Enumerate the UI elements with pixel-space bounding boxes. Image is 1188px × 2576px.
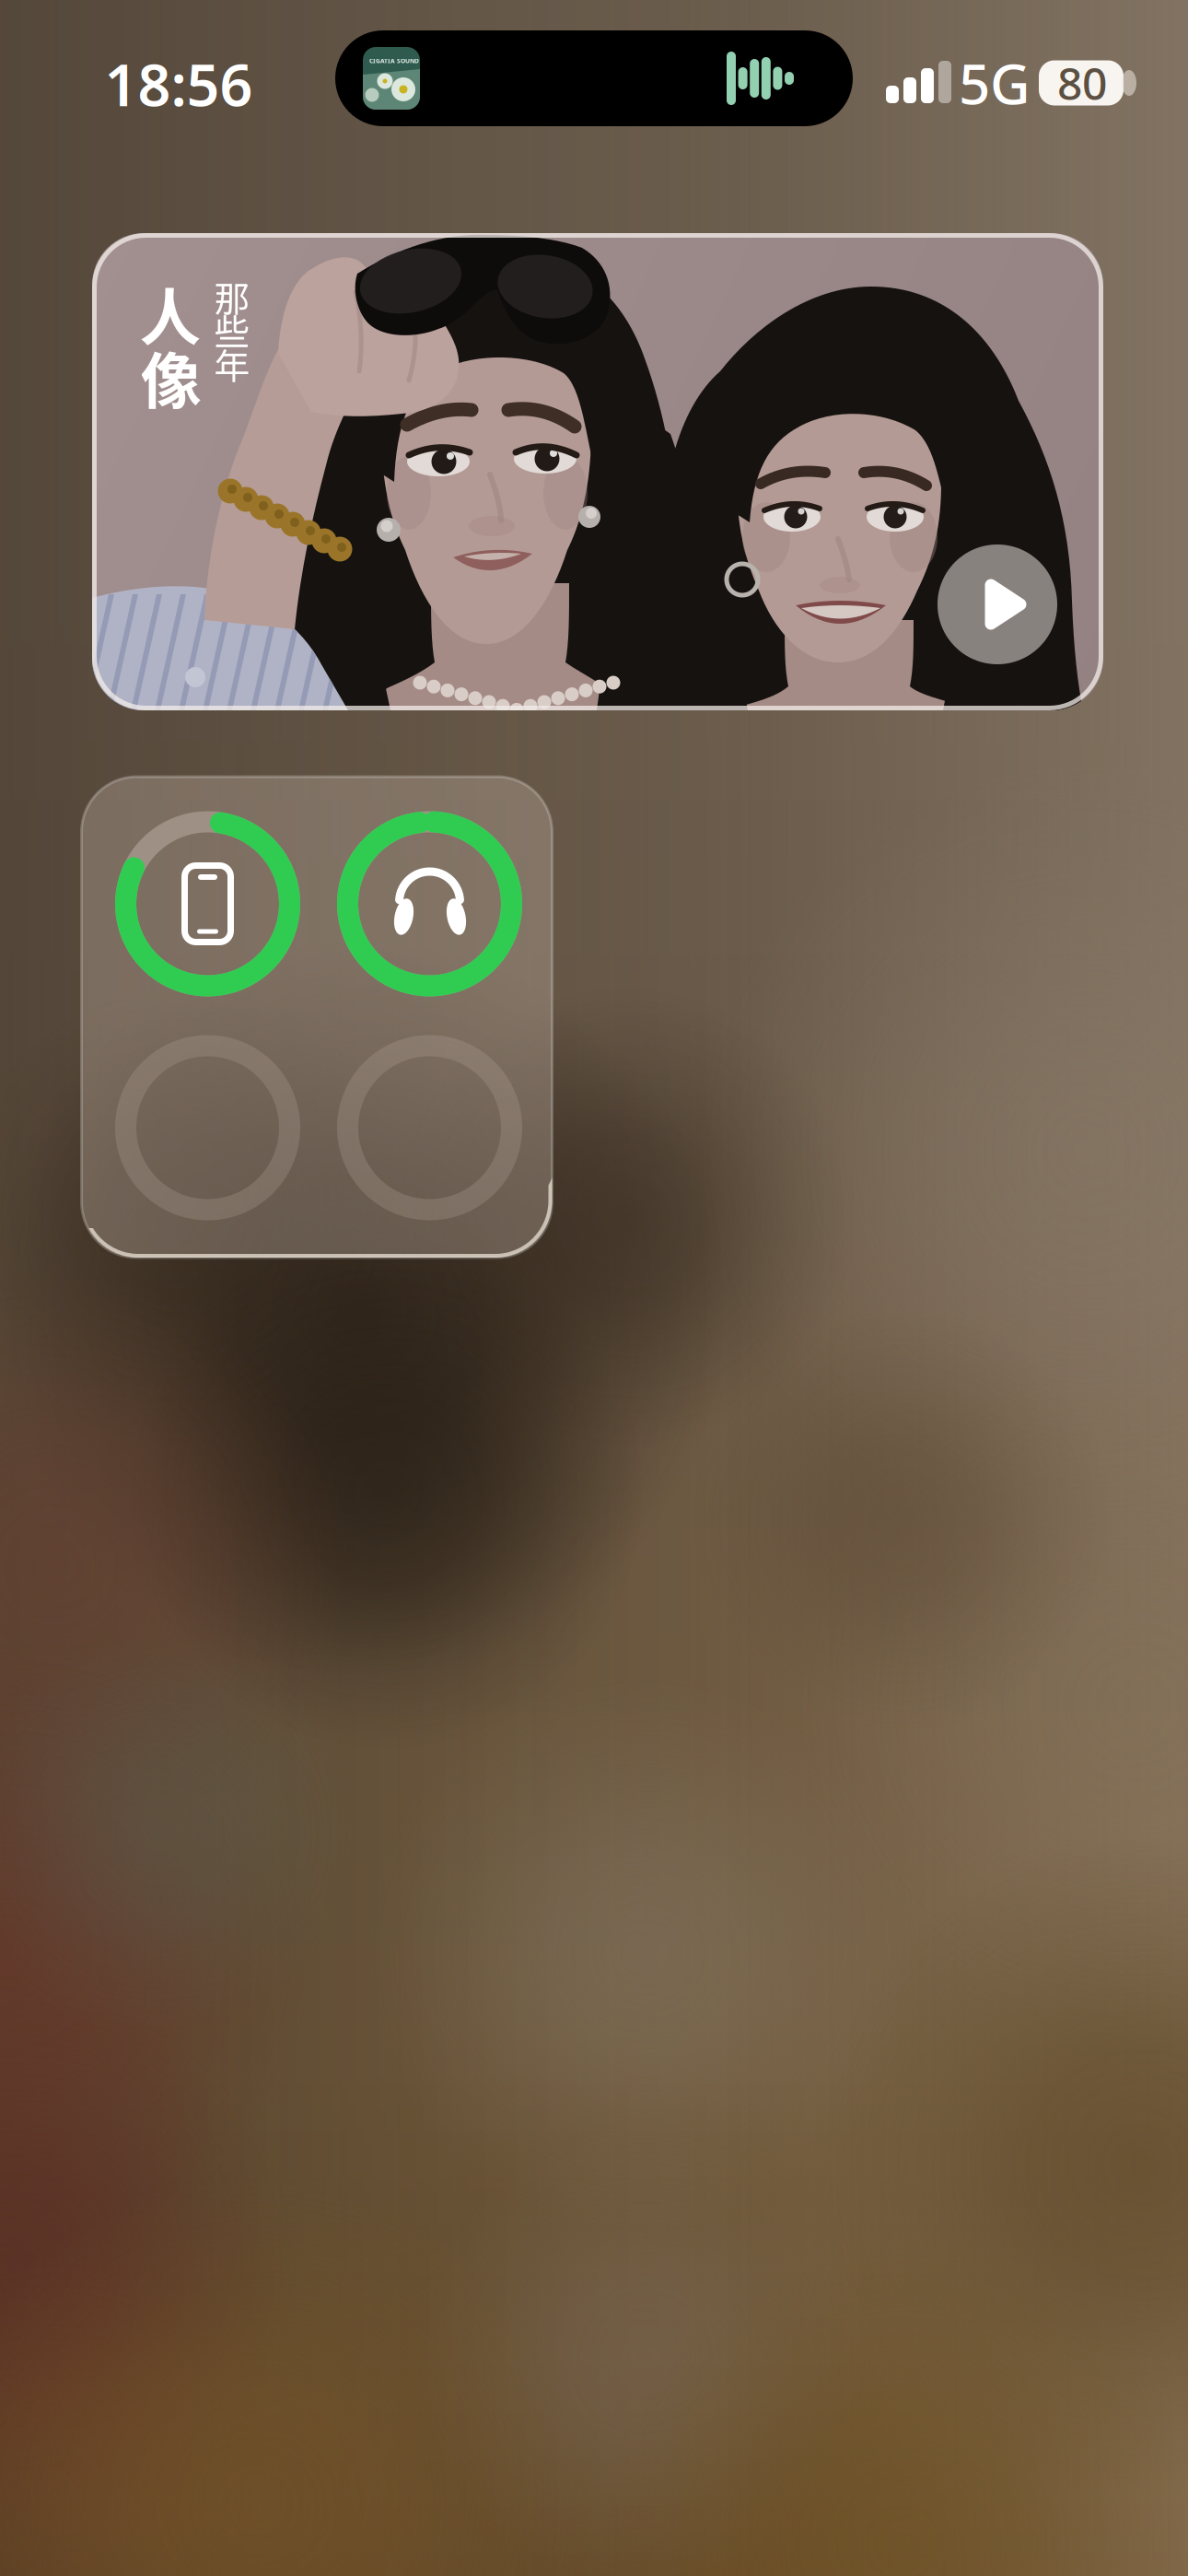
button[interactable]: Play memory bbox=[938, 544, 1057, 664]
staticText: 像 bbox=[140, 332, 202, 421]
button[interactable]: Memories widget bbox=[92, 233, 1103, 710]
staticText: CIGATIA SOUND bbox=[369, 57, 419, 65]
staticText: 18:56 bbox=[105, 46, 253, 122]
button[interactable]: Batteries widget bbox=[82, 777, 552, 1258]
staticText: 那 bbox=[214, 271, 250, 322]
staticText: 人 bbox=[140, 269, 201, 358]
staticText: 80 bbox=[1057, 54, 1107, 112]
staticText: 年 bbox=[214, 338, 250, 390]
staticText: 些 bbox=[214, 304, 250, 356]
staticText: 5G bbox=[959, 46, 1031, 120]
